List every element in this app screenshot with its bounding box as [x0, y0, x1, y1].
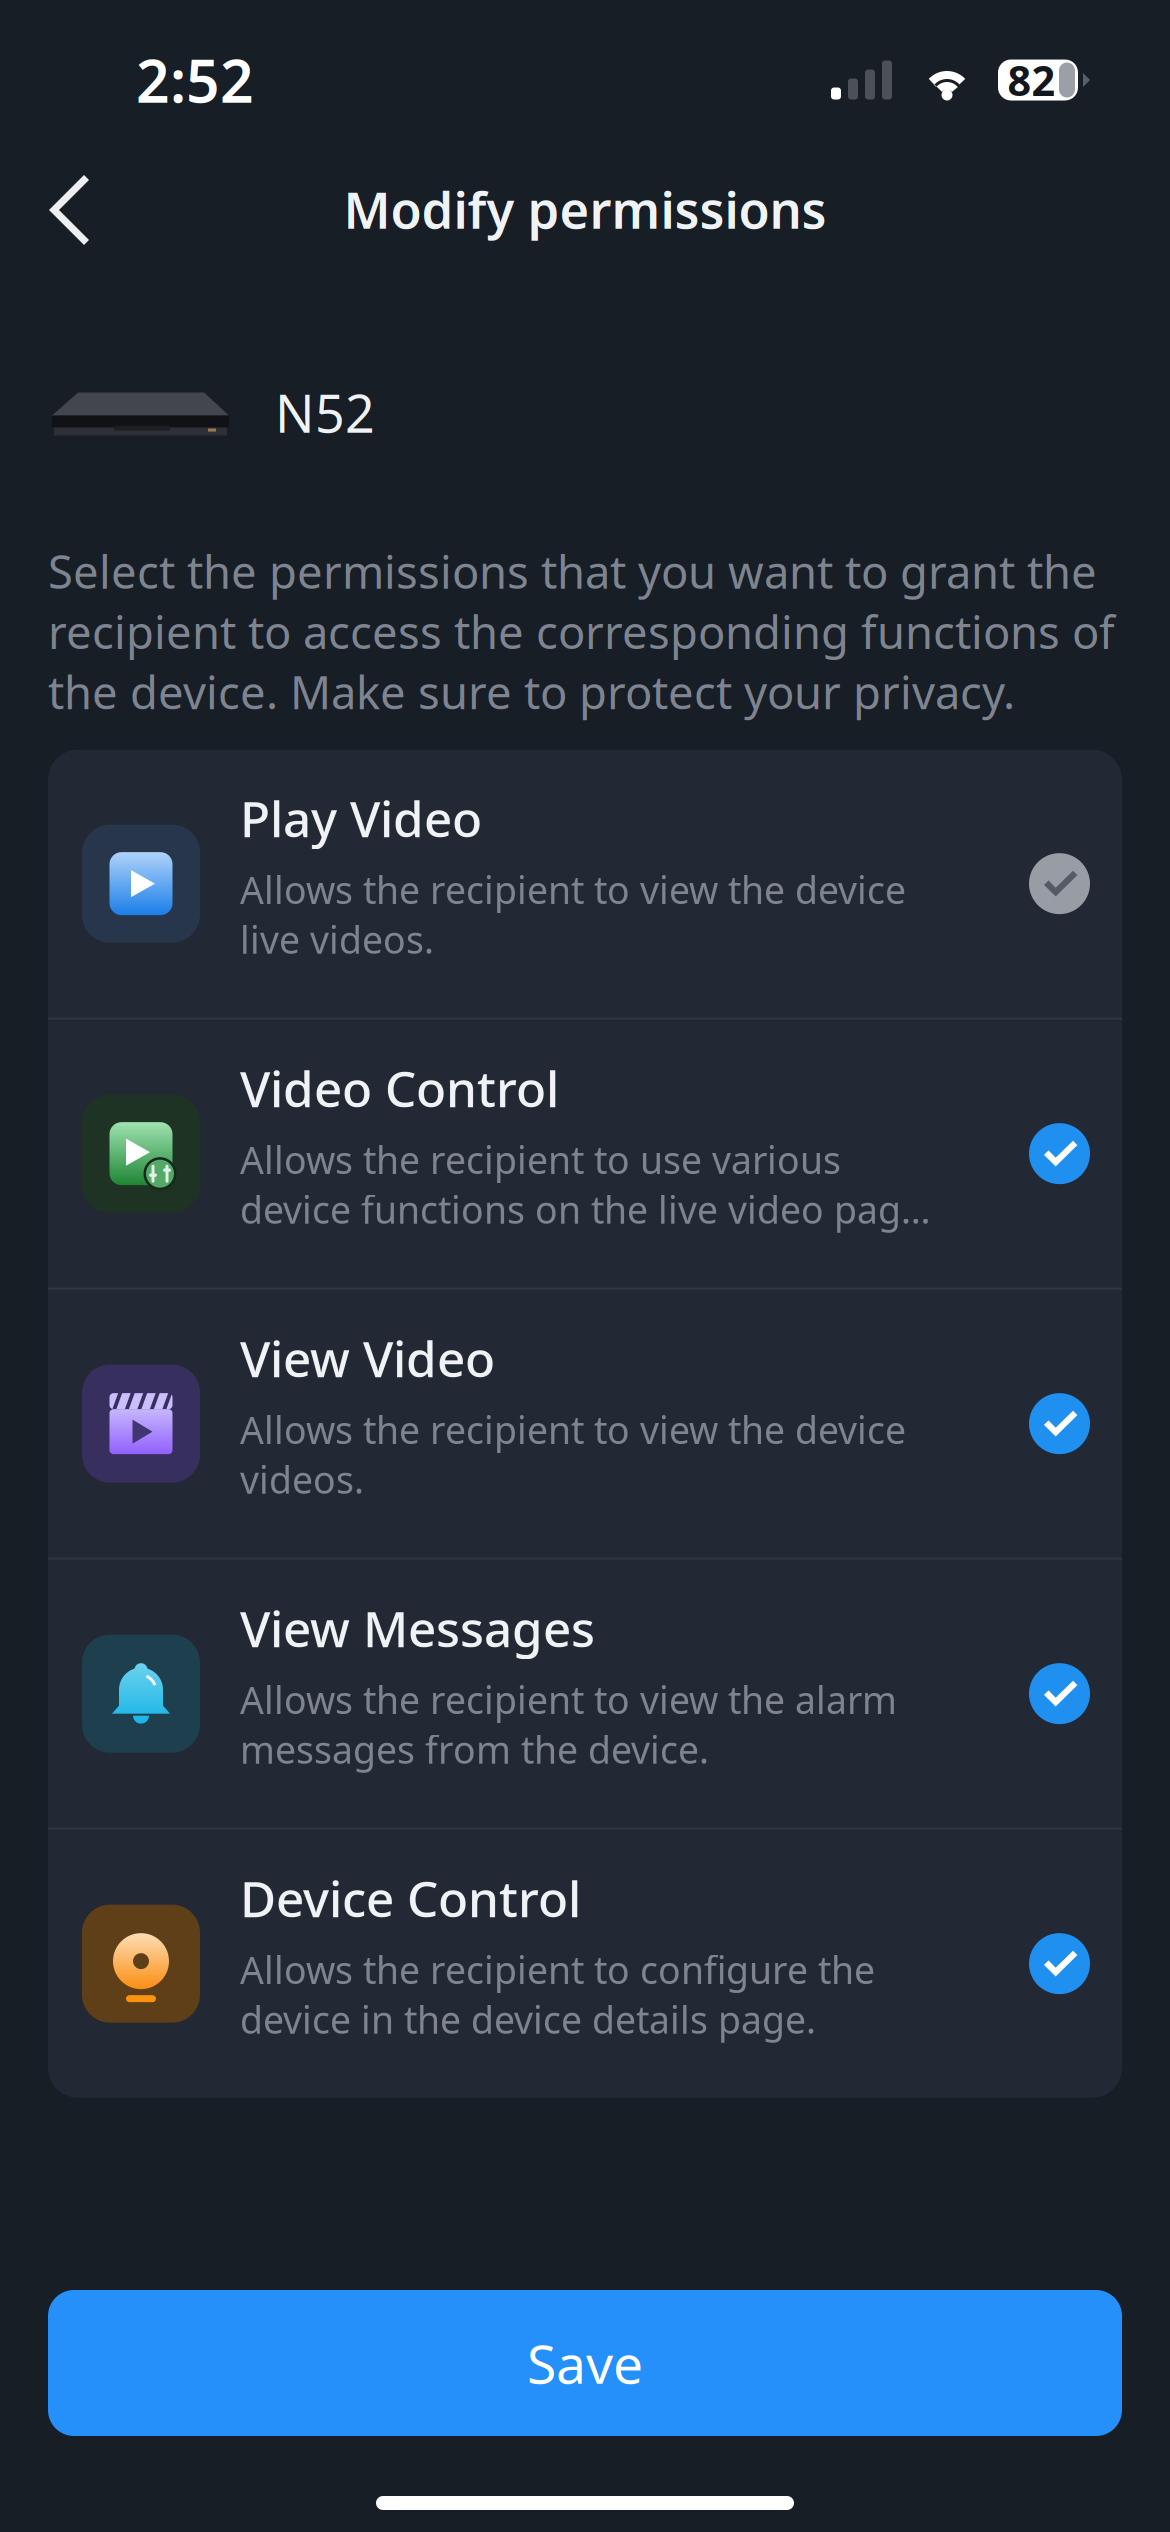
button[interactable]: Back [18, 144, 118, 272]
staticText: Allows the recipient to configure the de… [240, 1945, 875, 2044]
button[interactable]: Video Control [48, 1020, 1122, 1288]
staticText: View Messages [240, 1595, 595, 1661]
staticText: Allows the recipient to view the device … [240, 1405, 906, 1504]
staticText: Allows the recipient to view the alarm m… [240, 1675, 897, 1774]
staticText: N52 [275, 378, 375, 447]
staticText: 82 [1007, 53, 1055, 107]
button[interactable]: View Messages [48, 1560, 1122, 1828]
staticText: View Video [240, 1325, 495, 1391]
staticText: 2:52 [136, 41, 254, 119]
staticText: Allows the recipient to use various devi… [240, 1135, 940, 1234]
staticText: Play Video [240, 785, 482, 851]
button[interactable]: Play Video [48, 750, 1122, 1018]
staticText: Device Control [240, 1865, 581, 1931]
staticText: Video Control [240, 1055, 559, 1121]
button[interactable]: Device Control [48, 1830, 1122, 2098]
button[interactable]: Save [48, 2290, 1122, 2436]
staticText: Modify permissions [343, 175, 826, 243]
staticText: Select the permissions that you want to … [48, 541, 1115, 722]
button[interactable]: View Video [48, 1290, 1122, 1558]
staticText: Save [527, 2328, 643, 2398]
staticText: Allows the recipient to view the device … [240, 865, 906, 964]
